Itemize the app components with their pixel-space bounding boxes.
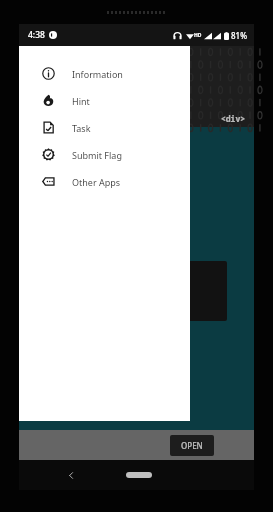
button[interactable]: Hint: [19, 87, 190, 114]
button[interactable]: Task: [19, 114, 190, 141]
staticText: <div>: [221, 113, 245, 124]
staticText: HD: [194, 32, 202, 39]
button[interactable]: Information: [19, 60, 190, 87]
staticText: 4:38: [28, 29, 45, 41]
staticText: Other Apps: [72, 176, 121, 188]
button[interactable]: Other Apps: [19, 168, 190, 195]
staticText: Task: [72, 122, 91, 134]
staticText: is different: [29, 150, 72, 162]
staticText: OPEN: [181, 440, 203, 451]
button[interactable]: Home: [126, 472, 152, 478]
button[interactable]: Back: [67, 471, 76, 480]
button[interactable]: Submit Flag: [19, 141, 190, 168]
staticText: Hint: [72, 95, 90, 107]
button[interactable]: OPEN: [170, 435, 214, 456]
staticText: 81%: [231, 30, 247, 41]
staticText: Submit Flag: [72, 149, 122, 161]
staticText: Information: [72, 68, 123, 80]
staticText: InfoSec: [41, 86, 120, 115]
